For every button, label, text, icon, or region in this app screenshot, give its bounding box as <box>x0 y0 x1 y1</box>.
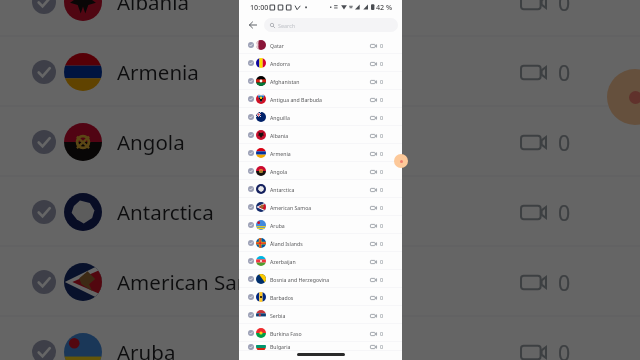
staticText: 0 <box>558 0 571 17</box>
staticText: Aruba <box>270 222 285 229</box>
staticText: Barbados <box>270 294 294 301</box>
staticText: 0 <box>380 168 384 175</box>
staticText: Anguilla <box>270 114 290 121</box>
staticText: 0 <box>380 312 384 319</box>
staticText: Angola <box>270 168 288 175</box>
button[interactable]: Angola <box>239 162 402 180</box>
staticText: Afghanistan <box>270 78 300 85</box>
staticText: Serbia <box>270 312 286 319</box>
staticText: Angola <box>117 128 185 156</box>
staticText: Bosnia and Herzegovina <box>270 276 330 283</box>
staticText: Åland Islands <box>270 240 303 247</box>
button[interactable]: Aruba <box>239 216 402 234</box>
staticText: 0 <box>380 186 384 193</box>
staticText: Aruba <box>117 338 176 360</box>
staticText: 0 <box>380 204 384 211</box>
button[interactable]: Azerbaijan <box>239 252 402 270</box>
staticText: Armenia <box>270 150 291 157</box>
staticText: 10:00 <box>250 2 269 12</box>
button[interactable]: Albania <box>0 0 640 37</box>
button[interactable]: Åland Islands <box>239 234 402 252</box>
button[interactable]: Andorra <box>239 54 402 72</box>
staticText: Antarctica <box>270 186 295 193</box>
staticText: 0 <box>380 343 384 350</box>
staticText: Burkina Faso <box>270 330 302 337</box>
button[interactable]: American Samoa <box>0 247 640 317</box>
staticText: Albania <box>270 132 289 139</box>
staticText: Andorra <box>270 60 290 67</box>
staticText: 0 <box>380 294 384 301</box>
staticText: 0 <box>380 114 384 121</box>
button[interactable]: Armenia <box>239 144 402 162</box>
staticText: 0 <box>558 198 571 227</box>
staticText: 0 <box>380 78 384 85</box>
staticText: American Samoa <box>117 268 280 296</box>
button[interactable]: Antarctica <box>239 180 402 198</box>
staticText: Albania <box>117 0 190 16</box>
staticText: Search <box>278 22 296 29</box>
button[interactable]: Search <box>264 18 398 32</box>
staticText: 0 <box>380 96 384 103</box>
button[interactable]: American Samoa <box>239 198 402 216</box>
staticText: Antarctica <box>117 198 214 226</box>
staticText: 0 <box>380 330 384 337</box>
staticText: 0 <box>380 258 384 265</box>
staticText: 0 <box>380 150 384 157</box>
staticText: 0 <box>558 128 571 157</box>
staticText: Qatar <box>270 42 284 49</box>
button[interactable]: Serbia <box>239 306 402 324</box>
button[interactable]: Back <box>247 19 259 31</box>
staticText: Azerbaijan <box>270 258 296 265</box>
button[interactable]: Aruba <box>0 317 640 360</box>
button[interactable]: Angola <box>0 107 640 177</box>
staticText: 42 % <box>376 2 393 12</box>
staticText: 0 <box>380 276 384 283</box>
button[interactable]: Burkina Faso <box>239 324 402 342</box>
button[interactable]: Armenia <box>0 37 640 107</box>
staticText: Antigua and Barbuda <box>270 96 322 103</box>
button[interactable]: Antarctica <box>0 177 640 247</box>
button[interactable]: Bosnia and Herzegovina <box>239 270 402 288</box>
button[interactable]: Afghanistan <box>239 72 402 90</box>
button[interactable]: Antigua and Barbuda <box>239 90 402 108</box>
staticText: 0 <box>380 132 384 139</box>
button[interactable]: Record <box>394 154 408 168</box>
staticText: 0 <box>558 268 571 297</box>
button[interactable]: Albania <box>239 126 402 144</box>
button[interactable]: Record <box>607 69 640 125</box>
button[interactable]: Bulgaria <box>239 342 402 351</box>
staticText: 0 <box>558 58 571 87</box>
button[interactable]: Qatar <box>239 36 402 54</box>
staticText: Armenia <box>117 58 199 86</box>
staticText: 0 <box>380 222 384 229</box>
staticText: Bulgaria <box>270 343 291 350</box>
staticText: 0 <box>380 60 384 67</box>
button[interactable]: Anguilla <box>239 108 402 126</box>
staticText: American Samoa <box>270 204 312 211</box>
button[interactable]: Barbados <box>239 288 402 306</box>
staticText: 0 <box>380 240 384 247</box>
staticText: 0 <box>380 42 384 49</box>
staticText: 0 <box>558 338 571 360</box>
